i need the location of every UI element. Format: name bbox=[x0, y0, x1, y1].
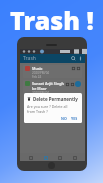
button[interactable]: More options bbox=[77, 55, 84, 62]
button[interactable]: Action bbox=[71, 66, 76, 71]
button[interactable]: Settings bbox=[71, 154, 78, 161]
button[interactable]: Sunset Arjit Singh ke Maar bbox=[23, 80, 82, 93]
staticText: Trash ! bbox=[10, 3, 94, 37]
staticText: Delete Permanently bbox=[33, 96, 78, 102]
staticText: 2020/PM/04 bbox=[32, 91, 50, 93]
button[interactable]: Action bbox=[70, 82, 75, 87]
staticText: NO bbox=[61, 116, 67, 121]
staticText: Chrome bbox=[32, 96, 47, 101]
button[interactable]: Action bbox=[70, 97, 75, 102]
button[interactable]: Restore bbox=[75, 96, 81, 102]
button[interactable]: NO bbox=[59, 115, 69, 122]
button[interactable]: Action bbox=[76, 66, 81, 71]
button[interactable]: Search bbox=[70, 55, 77, 62]
button[interactable]: Files bbox=[42, 154, 49, 161]
staticText: YES bbox=[71, 116, 78, 121]
button[interactable]: Trash bbox=[56, 154, 63, 161]
staticText: Sunset Arjit Singh ke Maar bbox=[32, 81, 65, 91]
button[interactable]: Action bbox=[65, 97, 70, 102]
button[interactable]: Music bbox=[23, 65, 82, 78]
button[interactable]: Restore bbox=[75, 81, 81, 87]
button[interactable]: YES bbox=[69, 115, 80, 122]
button[interactable]: Home bbox=[27, 154, 34, 161]
staticText: Music bbox=[32, 66, 43, 71]
staticText: Are you sure ? Delete all from Trash ? bbox=[27, 104, 68, 114]
button[interactable]: Action bbox=[65, 82, 70, 87]
staticText: Feb 24 bbox=[32, 105, 42, 108]
staticText: Feb 24 bbox=[32, 75, 42, 78]
staticText: 2020/PM/04 bbox=[32, 71, 50, 75]
button[interactable]: Chrome bbox=[23, 95, 82, 108]
staticText: Trash bbox=[23, 55, 37, 62]
